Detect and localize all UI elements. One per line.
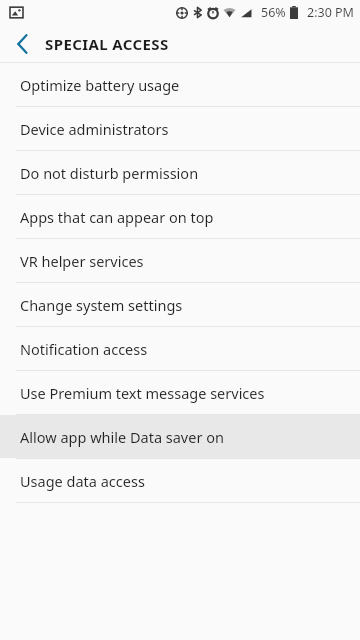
staticText: Device administrators — [20, 119, 169, 139]
staticText: Change system settings — [20, 295, 183, 315]
staticText: VR helper services — [20, 251, 144, 271]
button[interactable]: VR helper services — [0, 239, 360, 282]
staticText: Use Premium text message services — [20, 383, 265, 403]
staticText: Apps that can appear on top — [20, 207, 214, 227]
staticText: Optimize battery usage — [20, 75, 180, 95]
button[interactable]: Back — [0, 24, 45, 63]
button[interactable]: Optimize battery usage — [0, 63, 360, 106]
button[interactable]: Apps that can appear on top — [0, 195, 360, 238]
button[interactable]: Usage data access — [0, 459, 360, 502]
staticText: Usage data access — [20, 471, 145, 491]
button[interactable]: Allow app while Data saver on — [0, 415, 360, 458]
staticText: 2:30 PM — [307, 4, 354, 21]
staticText: SPECIAL ACCESS — [45, 34, 169, 54]
staticText: 56% — [261, 4, 286, 21]
staticText: Allow app while Data saver on — [20, 427, 224, 447]
staticText: Do not disturb permission — [20, 163, 199, 183]
staticText: Notification access — [20, 339, 148, 359]
button[interactable]: Notification access — [0, 327, 360, 370]
button[interactable]: Device administrators — [0, 107, 360, 150]
button[interactable]: Do not disturb permission — [0, 151, 360, 194]
button[interactable]: Change system settings — [0, 283, 360, 326]
button[interactable]: Use Premium text message services — [0, 371, 360, 414]
